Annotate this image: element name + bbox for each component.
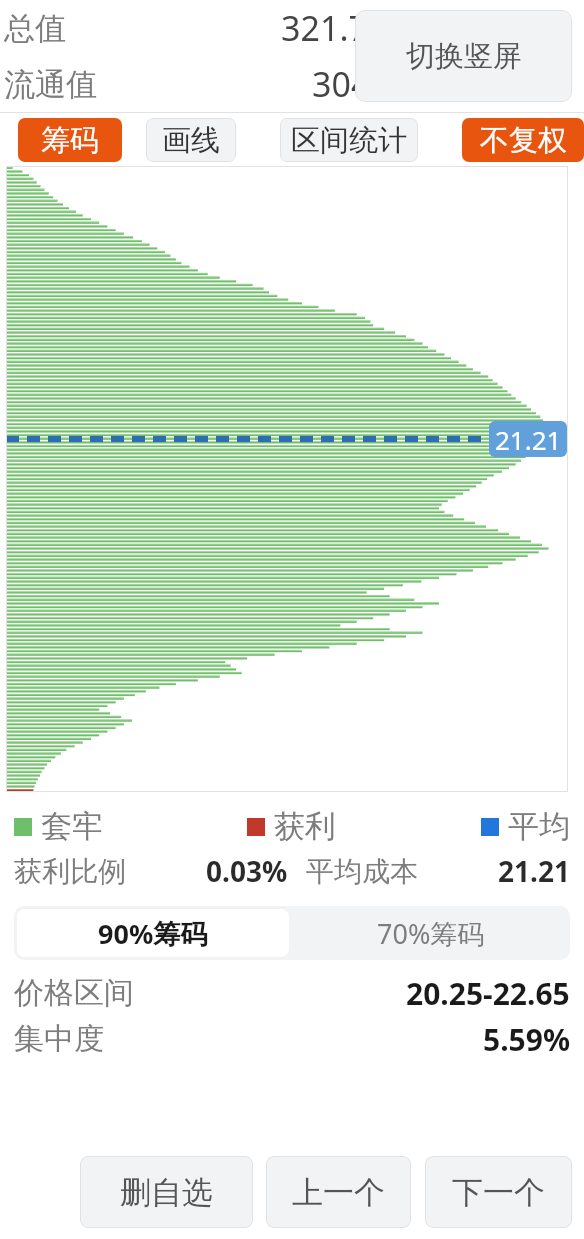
staticText: 总值: [4, 9, 66, 48]
staticText: 平均成本: [306, 854, 418, 889]
staticText: 90%筹码: [98, 915, 208, 952]
staticText: 21.21: [498, 852, 570, 890]
staticText: 平均: [508, 807, 570, 846]
staticText: 集中度: [14, 1020, 104, 1058]
button[interactable]: 下一个: [425, 1156, 572, 1228]
staticText: 304.2亿: [103, 61, 433, 107]
button[interactable]: 区间统计: [280, 118, 418, 162]
button[interactable]: 不复权: [462, 118, 584, 162]
staticText: 21.21: [495, 422, 562, 457]
staticText: 上一个: [292, 1173, 385, 1212]
staticText: 0.03%: [206, 852, 288, 890]
staticText: 不复权: [480, 122, 567, 159]
staticText: 70%筹码: [377, 915, 485, 952]
button[interactable]: 删自选: [80, 1156, 253, 1228]
button[interactable]: 切换竖屏: [355, 10, 572, 102]
staticText: 流通值: [4, 65, 97, 104]
staticText: 套牢: [41, 807, 103, 846]
staticText: 价格区间: [14, 974, 134, 1012]
staticText: 切换竖屏: [406, 38, 522, 75]
button[interactable]: 90%筹码: [17, 909, 289, 957]
button[interactable]: 筹码: [18, 118, 122, 162]
staticText: 下一个: [452, 1173, 545, 1212]
staticText: 20.25-22.65: [406, 973, 570, 1014]
button[interactable]: 70%筹码: [292, 906, 570, 960]
staticText: 筹码: [41, 122, 99, 159]
staticText: 获利比例: [14, 854, 126, 889]
staticText: 5.59%: [483, 1019, 570, 1060]
button[interactable]: 上一个: [266, 1156, 411, 1228]
staticText: 321.7亿: [72, 5, 402, 51]
staticText: 删自选: [120, 1173, 213, 1212]
staticText: 区间统计: [291, 122, 407, 159]
staticText: 获利: [274, 807, 336, 846]
staticText: 画线: [162, 122, 220, 159]
button[interactable]: 画线: [146, 118, 236, 162]
